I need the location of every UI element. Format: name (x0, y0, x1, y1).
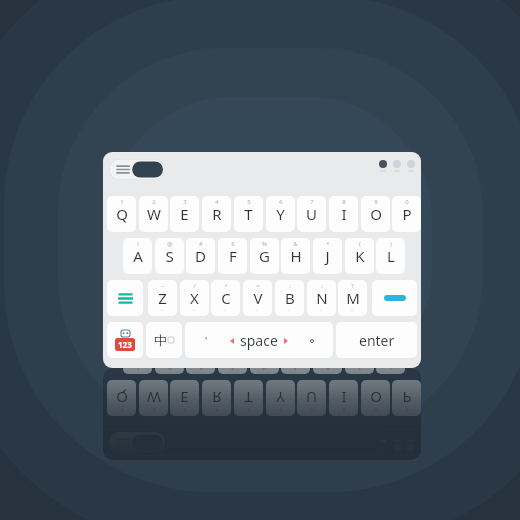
button[interactable]: 0 (392, 380, 421, 416)
button[interactable]: ( (345, 238, 374, 274)
staticText: 6 (279, 198, 283, 206)
staticText: ·· (161, 307, 164, 314)
staticText: 7 (310, 198, 314, 206)
staticText: 5 (247, 406, 251, 414)
staticText: Q (116, 204, 128, 224)
button[interactable]: % (250, 368, 279, 374)
staticText: 中 (154, 332, 167, 348)
button[interactable]: ! (123, 238, 152, 274)
staticText: 0 (405, 406, 409, 414)
staticText: I (341, 388, 347, 408)
staticText: V (253, 288, 263, 308)
staticText: % (262, 368, 267, 372)
staticText: 6 (279, 406, 283, 414)
button[interactable]: 2 (139, 196, 168, 232)
staticText: ·· (256, 307, 259, 314)
button[interactable]: Chinese input (146, 322, 182, 358)
staticText: P (402, 388, 412, 408)
button[interactable]: @ (155, 368, 184, 374)
button[interactable]: = (243, 280, 272, 316)
button[interactable]: Symbols (107, 280, 143, 316)
button[interactable]: / (180, 280, 209, 316)
staticText: H (290, 246, 302, 266)
staticText: * (326, 368, 330, 372)
button[interactable]: ( (345, 368, 374, 374)
staticText: C (221, 288, 231, 308)
staticText: : (289, 282, 291, 290)
button[interactable]: 1 (107, 380, 136, 416)
button[interactable]: $ (218, 238, 247, 274)
button[interactable]: Numbers (107, 322, 143, 358)
staticText: ' (205, 334, 208, 348)
staticText: 1 (120, 406, 124, 414)
staticText: I (341, 204, 347, 224)
staticText: ·· (288, 307, 291, 314)
button[interactable]: ! (123, 368, 152, 374)
staticText: 123 (118, 339, 132, 350)
staticText: Y (276, 204, 285, 224)
staticText: L (387, 246, 395, 266)
button[interactable]: 6 (266, 380, 295, 416)
button[interactable]: ) (376, 368, 405, 374)
staticText: S (165, 246, 174, 266)
button[interactable]: 3 (170, 380, 199, 416)
button[interactable]: 9 (361, 196, 390, 232)
button[interactable]: * (313, 368, 342, 374)
button[interactable]: % (250, 238, 279, 274)
button[interactable]: 5 (234, 380, 263, 416)
button[interactable]: & (281, 238, 310, 274)
button[interactable]: 8 (329, 196, 358, 232)
staticText: J (325, 246, 330, 266)
button[interactable]: Enter (336, 322, 417, 358)
button[interactable]: ^ (211, 280, 240, 316)
button[interactable]: 9 (361, 380, 390, 416)
button[interactable]: ) (376, 238, 405, 274)
staticText: N (316, 288, 328, 308)
staticText: = (256, 282, 260, 290)
staticText: R (212, 204, 222, 224)
staticText: ! (137, 240, 139, 248)
button[interactable]: $ (218, 368, 247, 374)
button[interactable]: Candidate pages (379, 160, 415, 172)
button[interactable]: ~ (148, 280, 177, 316)
staticText: ·· (193, 307, 196, 314)
button[interactable]: & (281, 368, 310, 374)
button[interactable]: ; (307, 280, 336, 316)
button[interactable]: 1 (107, 196, 136, 232)
staticText: E (180, 388, 189, 408)
button[interactable]: 0 (392, 196, 421, 232)
staticText: 2 (152, 406, 156, 414)
staticText: ·· (320, 307, 323, 314)
button[interactable]: 7 (297, 196, 326, 232)
button[interactable]: Space (185, 322, 333, 358)
button[interactable]: 3 (170, 196, 199, 232)
staticText: P (402, 204, 412, 224)
staticText: ~ (161, 282, 165, 290)
button[interactable]: 4 (202, 196, 231, 232)
button[interactable]: 6 (266, 196, 295, 232)
staticText: # (199, 240, 203, 248)
button[interactable]: * (313, 238, 342, 274)
button[interactable]: 2 (139, 380, 168, 416)
button[interactable]: : (275, 280, 304, 316)
button[interactable]: Keyboard layout toggle (109, 159, 165, 180)
staticText: 9 (374, 198, 378, 206)
button[interactable]: # (186, 368, 215, 374)
button[interactable]: ? (338, 280, 367, 316)
button[interactable]: @ (155, 238, 184, 274)
staticText: B (285, 288, 295, 308)
button[interactable]: # (186, 238, 215, 274)
staticText: 3 (183, 198, 187, 206)
button[interactable]: 5 (234, 196, 263, 232)
button[interactable]: Keyboard layout toggle (109, 432, 165, 453)
button[interactable]: 7 (297, 380, 326, 416)
staticText: Q (116, 388, 128, 408)
staticText: ; (321, 282, 323, 290)
staticText: A (133, 246, 143, 266)
staticText: 7 (310, 406, 314, 414)
button[interactable]: Backspace (372, 280, 417, 316)
button[interactable]: 4 (202, 380, 231, 416)
staticText: % (262, 240, 267, 248)
button[interactable]: 8 (329, 380, 358, 416)
